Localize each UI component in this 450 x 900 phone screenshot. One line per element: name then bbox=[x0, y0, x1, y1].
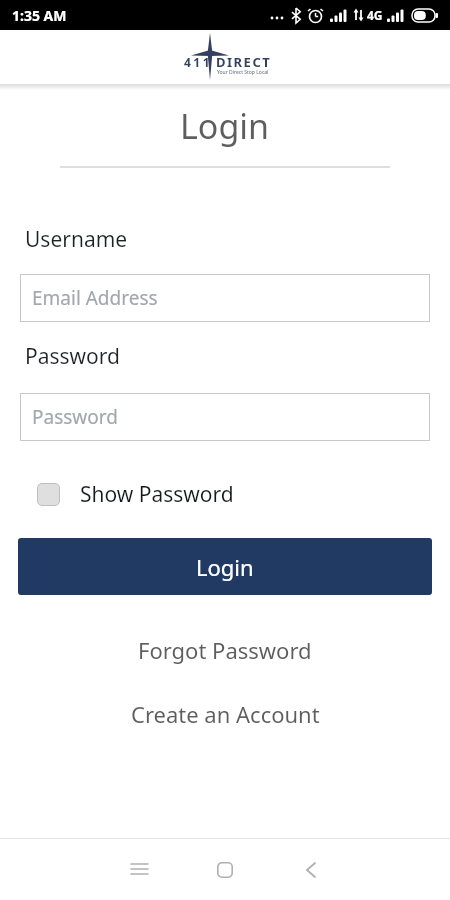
staticText: Your Direct Stop Local bbox=[217, 69, 269, 76]
button[interactable] bbox=[195, 839, 255, 900]
staticText: Create an Account bbox=[131, 699, 320, 729]
staticText: Password bbox=[32, 404, 118, 430]
staticText: Show Password bbox=[80, 480, 234, 509]
staticText: Email Address bbox=[32, 285, 158, 311]
button[interactable]: Forgot Password bbox=[0, 632, 450, 668]
button[interactable] bbox=[109, 839, 169, 900]
button[interactable]: Login bbox=[18, 538, 432, 595]
staticText: 1:35 AM bbox=[12, 6, 67, 25]
staticText: DIRECT bbox=[216, 53, 272, 71]
button[interactable]: Show Password bbox=[37, 480, 234, 509]
staticText: Password bbox=[25, 342, 120, 371]
staticText: Username bbox=[25, 225, 128, 254]
button[interactable] bbox=[281, 839, 341, 900]
staticText: Forgot Password bbox=[138, 635, 312, 665]
staticText: Login bbox=[180, 103, 270, 149]
staticText: 4G bbox=[367, 7, 383, 23]
staticText: 411 bbox=[184, 54, 213, 70]
button[interactable]: Create an Account bbox=[0, 696, 450, 732]
button[interactable]: Password bbox=[20, 393, 430, 441]
button[interactable]: Email Address bbox=[20, 274, 430, 322]
staticText: Login bbox=[196, 552, 254, 582]
